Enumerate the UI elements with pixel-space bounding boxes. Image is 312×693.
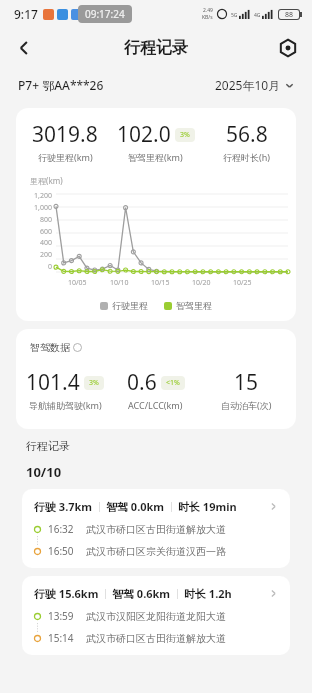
staticText: 行程记录 [124, 38, 188, 58]
staticText: 3% [89, 378, 99, 388]
staticText: 101.4 [26, 368, 80, 397]
staticText: 智驾里程 [176, 300, 212, 311]
button[interactable]: 行驶 3.7km [22, 489, 290, 568]
staticText: <1% [166, 378, 180, 388]
staticText: 800 [39, 215, 52, 225]
staticText: 3019.8 [32, 120, 98, 149]
staticText: 600 [39, 227, 52, 237]
staticText: 导航辅助驾驶(km) [29, 399, 102, 411]
staticText: 2.49 [203, 7, 213, 14]
staticText: 10/20 [192, 278, 211, 288]
staticText: 10/15 [151, 278, 170, 288]
staticText: 武汉市汉阳区龙阳街道龙阳大道 [86, 610, 226, 623]
staticText: 行驶 3.7km [34, 499, 93, 514]
button[interactable]: 智驾数据 [30, 341, 82, 354]
staticText: 10/25 [233, 278, 252, 288]
staticText: 400 [39, 238, 52, 248]
staticText: 200 [39, 250, 52, 260]
staticText: 行程时长(h) [223, 151, 270, 163]
staticText: 9:17 [14, 6, 38, 22]
staticText: 16:50 [48, 544, 74, 558]
staticText: 武汉市硚口区古田街道解放大道 [86, 632, 226, 645]
staticText: 10/10 [26, 463, 62, 481]
button[interactable]: P7+ 鄂AA***26 [18, 77, 104, 93]
staticText: 武汉市硚口区古田街道解放大道 [86, 523, 226, 536]
staticText: 102.0 [117, 120, 171, 149]
staticText: 行驶里程(km) [38, 151, 93, 163]
staticText: 智驾 0.6km [112, 586, 171, 601]
staticText: 自动泊车(次) [221, 399, 272, 411]
staticText: 2025年10月 [215, 77, 281, 93]
staticText: 智驾里程(km) [128, 151, 183, 163]
staticText: 3% [180, 130, 190, 140]
staticText: 09:17:24 [85, 7, 125, 21]
button[interactable]: 2025年10月 [215, 77, 294, 93]
button[interactable]: Settings [272, 32, 304, 64]
staticText: 5G [231, 12, 238, 19]
button[interactable]: Back [6, 30, 42, 66]
staticText: 智驾数据 [30, 341, 70, 354]
staticText: P7+ 鄂AA***26 [18, 77, 104, 93]
staticText: 15 [234, 368, 259, 397]
staticText: 武汉市硚口区宗关街道汉西一路 [86, 545, 226, 558]
staticText: 0 [47, 262, 52, 272]
staticText: 时长 19min [178, 499, 237, 514]
staticText: 行驶里程 [112, 300, 148, 311]
staticText: 10/05 [68, 278, 87, 288]
staticText: 行程记录 [26, 439, 70, 453]
staticText: 0.6 [127, 368, 157, 397]
staticText: 1,000 [34, 203, 52, 213]
staticText: 行驶 15.6km [34, 586, 99, 601]
staticText: 16:32 [48, 522, 74, 536]
staticText: KB/s [202, 14, 213, 21]
button[interactable]: 行驶 15.6km [22, 576, 290, 655]
staticText: 里程(km) [30, 175, 63, 186]
staticText: 56.8 [226, 120, 268, 149]
staticText: 智驾 0.0km [106, 499, 165, 514]
staticText: 1,200 [34, 191, 52, 201]
staticText: ACC/LCC(km) [128, 399, 183, 411]
staticText: 15:14 [48, 631, 74, 645]
staticText: 88 [285, 10, 294, 19]
staticText: 4G [254, 12, 261, 19]
staticText: 10/10 [110, 278, 129, 288]
staticText: 时长 1.2h [184, 586, 232, 601]
staticText: 13:59 [48, 609, 74, 623]
